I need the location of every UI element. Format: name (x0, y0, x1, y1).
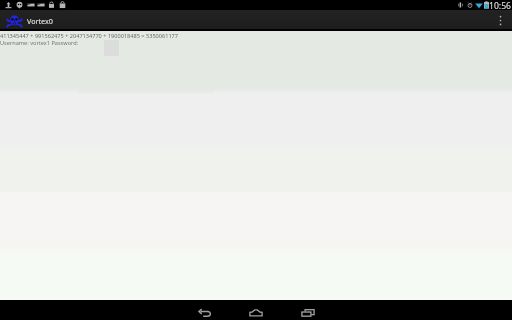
button[interactable]: More options (492, 10, 512, 31)
staticText: 411345447 + 991562475 + 2047134770 + 190… (0, 32, 179, 40)
button[interactable]: Home (230, 300, 282, 320)
staticText: 10:56 (489, 0, 511, 10)
staticText: Vortex0 (27, 16, 53, 26)
button[interactable]: Recent apps (282, 300, 334, 320)
staticText: Username: vortex1 Password: (0, 39, 79, 47)
button[interactable]: Back (178, 300, 230, 320)
